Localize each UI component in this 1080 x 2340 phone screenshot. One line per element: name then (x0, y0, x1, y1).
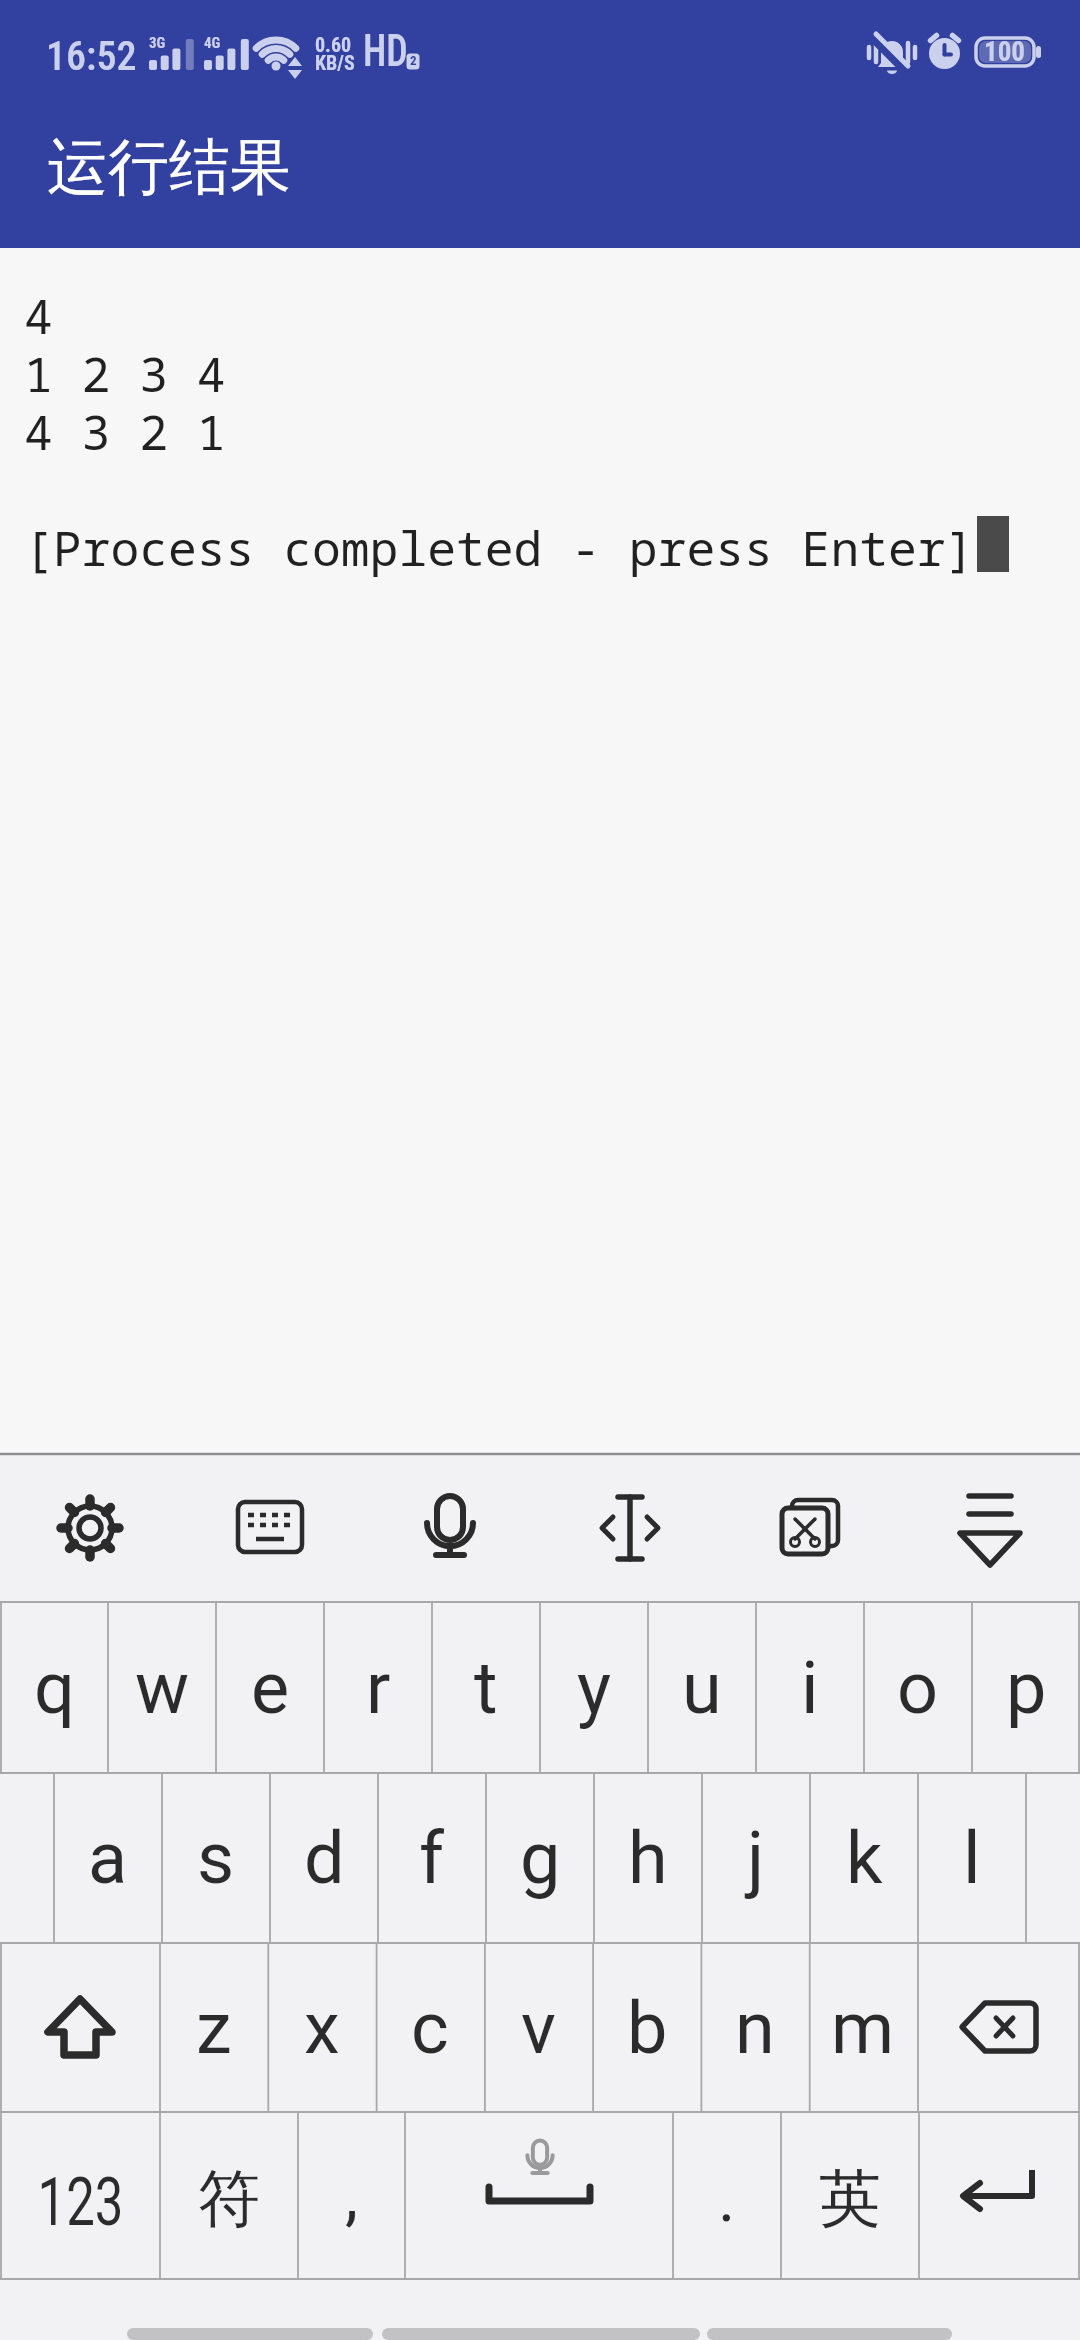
button[interactable]: g (486, 1773, 594, 1943)
button[interactable]: . (673, 2112, 781, 2279)
button[interactable]: 英 (781, 2112, 919, 2279)
button[interactable]: n (701, 1943, 809, 2112)
staticText: p (1006, 1646, 1047, 1730)
staticText: 3G (149, 34, 166, 52)
button[interactable]: l (918, 1773, 1026, 1943)
staticText: m (831, 1986, 895, 2070)
staticText: 2 (410, 53, 417, 68)
staticText: x (304, 1986, 340, 2070)
staticText: g (520, 1816, 561, 1900)
staticText: z (196, 1986, 232, 2070)
staticText: 4G (204, 34, 221, 52)
staticText: j (747, 1816, 765, 1900)
button[interactable]: t (432, 1602, 540, 1773)
button[interactable]: a (54, 1773, 162, 1943)
button[interactable]: x (268, 1943, 376, 2112)
staticText: l (963, 1816, 981, 1900)
button[interactable]: 123 (0, 2112, 160, 2279)
staticText: 0.60 (315, 33, 352, 56)
staticText: a (88, 1816, 128, 1900)
button[interactable] (540, 1456, 720, 1602)
button[interactable]: q (0, 1602, 108, 1773)
button[interactable] (0, 1456, 180, 1602)
button[interactable]: h (594, 1773, 702, 1943)
button[interactable]: p (972, 1602, 1080, 1773)
button[interactable] (918, 1943, 1080, 2112)
button[interactable]: s (162, 1773, 270, 1943)
staticText: v (521, 1986, 556, 2070)
button[interactable]: r (324, 1602, 432, 1773)
staticText: y (577, 1646, 612, 1730)
button[interactable]: f (378, 1773, 486, 1943)
button[interactable] (180, 1456, 360, 1602)
staticText: h (628, 1816, 668, 1900)
button[interactable]: m (809, 1943, 917, 2112)
button[interactable]: b (593, 1943, 701, 2112)
staticText: q (34, 1646, 75, 1730)
staticText: w (135, 1646, 190, 1730)
button[interactable]: o (864, 1602, 972, 1773)
button[interactable]: w (108, 1602, 216, 1773)
button[interactable]: k (810, 1773, 918, 1943)
staticText: , (345, 2157, 358, 2234)
button[interactable]: 符 (160, 2112, 298, 2279)
button[interactable]: z (160, 1943, 268, 2112)
button[interactable] (405, 2112, 673, 2279)
button[interactable]: v (484, 1943, 592, 2112)
button[interactable]: j (702, 1773, 810, 1943)
staticText: d (304, 1816, 345, 1900)
staticText: 100 (984, 36, 1025, 68)
button[interactable]: d (270, 1773, 378, 1943)
staticText: o (897, 1646, 939, 1730)
button[interactable]: , (298, 2112, 405, 2279)
button[interactable]: u (648, 1602, 756, 1773)
staticText: i (801, 1646, 819, 1730)
staticText: c (411, 1986, 449, 2070)
staticText: s (197, 1816, 235, 1900)
staticText: KB/S (315, 51, 355, 74)
staticText: e (251, 1646, 290, 1730)
staticText: 123 (38, 2163, 123, 2242)
button[interactable]: y (540, 1602, 648, 1773)
staticText: b (627, 1986, 668, 2070)
staticText: k (846, 1816, 883, 1900)
staticText: 符 (198, 2160, 260, 2238)
button[interactable] (0, 1943, 160, 2112)
staticText: 运行结果 (47, 129, 291, 206)
staticText: n (735, 1986, 775, 2070)
staticText: . (718, 2160, 736, 2237)
button[interactable]: e (216, 1602, 324, 1773)
staticText: r (366, 1646, 391, 1730)
staticText: u (682, 1646, 722, 1730)
staticText: t (474, 1646, 498, 1730)
staticText: 4 1 2 3 4 4 3 2 1 [Process completed - p… (24, 283, 975, 580)
button[interactable] (919, 2112, 1080, 2279)
button[interactable]: i (756, 1602, 864, 1773)
staticText: f (419, 1816, 445, 1900)
button[interactable] (720, 1456, 900, 1602)
button[interactable] (360, 1456, 540, 1602)
button[interactable]: c (376, 1943, 484, 2112)
button[interactable] (900, 1456, 1080, 1602)
staticText: HD (363, 24, 408, 77)
staticText: 16:52 (46, 33, 137, 80)
staticText: 英 (819, 2160, 881, 2238)
